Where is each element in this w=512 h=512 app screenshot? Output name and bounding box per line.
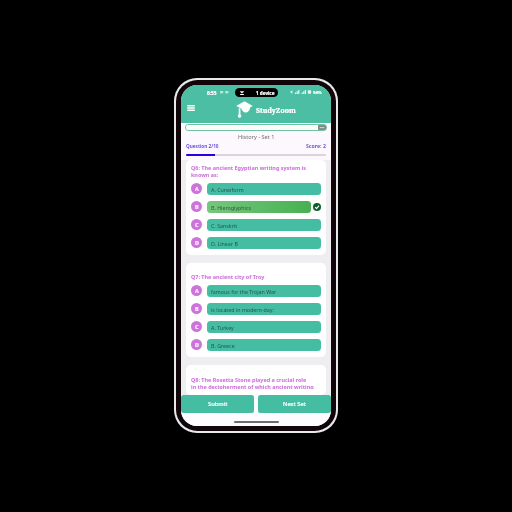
staticText: StudyZoom <box>256 106 296 115</box>
staticText: D <box>195 239 199 246</box>
staticText: Question 2/10 <box>186 143 219 149</box>
staticText: A. Cuneiform <box>211 186 244 193</box>
staticText: B <box>195 203 199 210</box>
staticText: Next Set <box>283 400 306 408</box>
button[interactable]: Search <box>185 124 327 131</box>
staticText: 94% <box>313 90 322 96</box>
staticText: 6:55 <box>207 90 217 97</box>
staticText: Q6: The ancient Egyptian writing system … <box>191 164 306 171</box>
staticText: 1 device <box>256 90 275 96</box>
staticText: Q8: The Rosetta Stone played a crucial r… <box>191 376 307 383</box>
staticText: Score: 2 <box>306 142 326 149</box>
staticText: B <box>195 305 199 312</box>
staticText: A <box>195 185 199 192</box>
staticText: History - Set 1 <box>238 133 275 141</box>
button[interactable]: C <box>191 219 321 231</box>
staticText: C. Sanskrit <box>211 222 238 229</box>
button[interactable]: Menu <box>184 101 198 115</box>
button[interactable]: C <box>191 321 321 333</box>
staticText: D <box>195 341 199 348</box>
staticText: Submit <box>208 400 228 408</box>
staticText: known as: <box>191 171 219 178</box>
button[interactable]: A <box>191 183 321 195</box>
staticText: is located in modern-day: <box>211 306 274 313</box>
staticText: famous for the Trojan War <box>211 288 277 295</box>
button[interactable]: A <box>191 285 321 297</box>
button[interactable]: Submit <box>181 395 254 413</box>
staticText: C <box>195 323 199 330</box>
staticText: in the decipherment of which ancient wri… <box>191 383 314 389</box>
staticText: D. Linear B <box>211 240 238 247</box>
staticText: A <box>195 287 199 294</box>
button[interactable]: B <box>191 303 321 315</box>
staticText: A. Turkey <box>211 324 234 331</box>
staticText: B. Greece <box>211 342 235 349</box>
staticText: Q7: The ancient city of Troy <box>191 273 265 280</box>
button[interactable]: B <box>191 201 321 213</box>
staticText: B. Hieroglyphics <box>211 204 252 211</box>
staticText: C <box>195 221 199 228</box>
button[interactable]: D <box>191 339 321 351</box>
button[interactable]: D <box>191 237 321 249</box>
button[interactable]: Next Set <box>258 395 331 413</box>
